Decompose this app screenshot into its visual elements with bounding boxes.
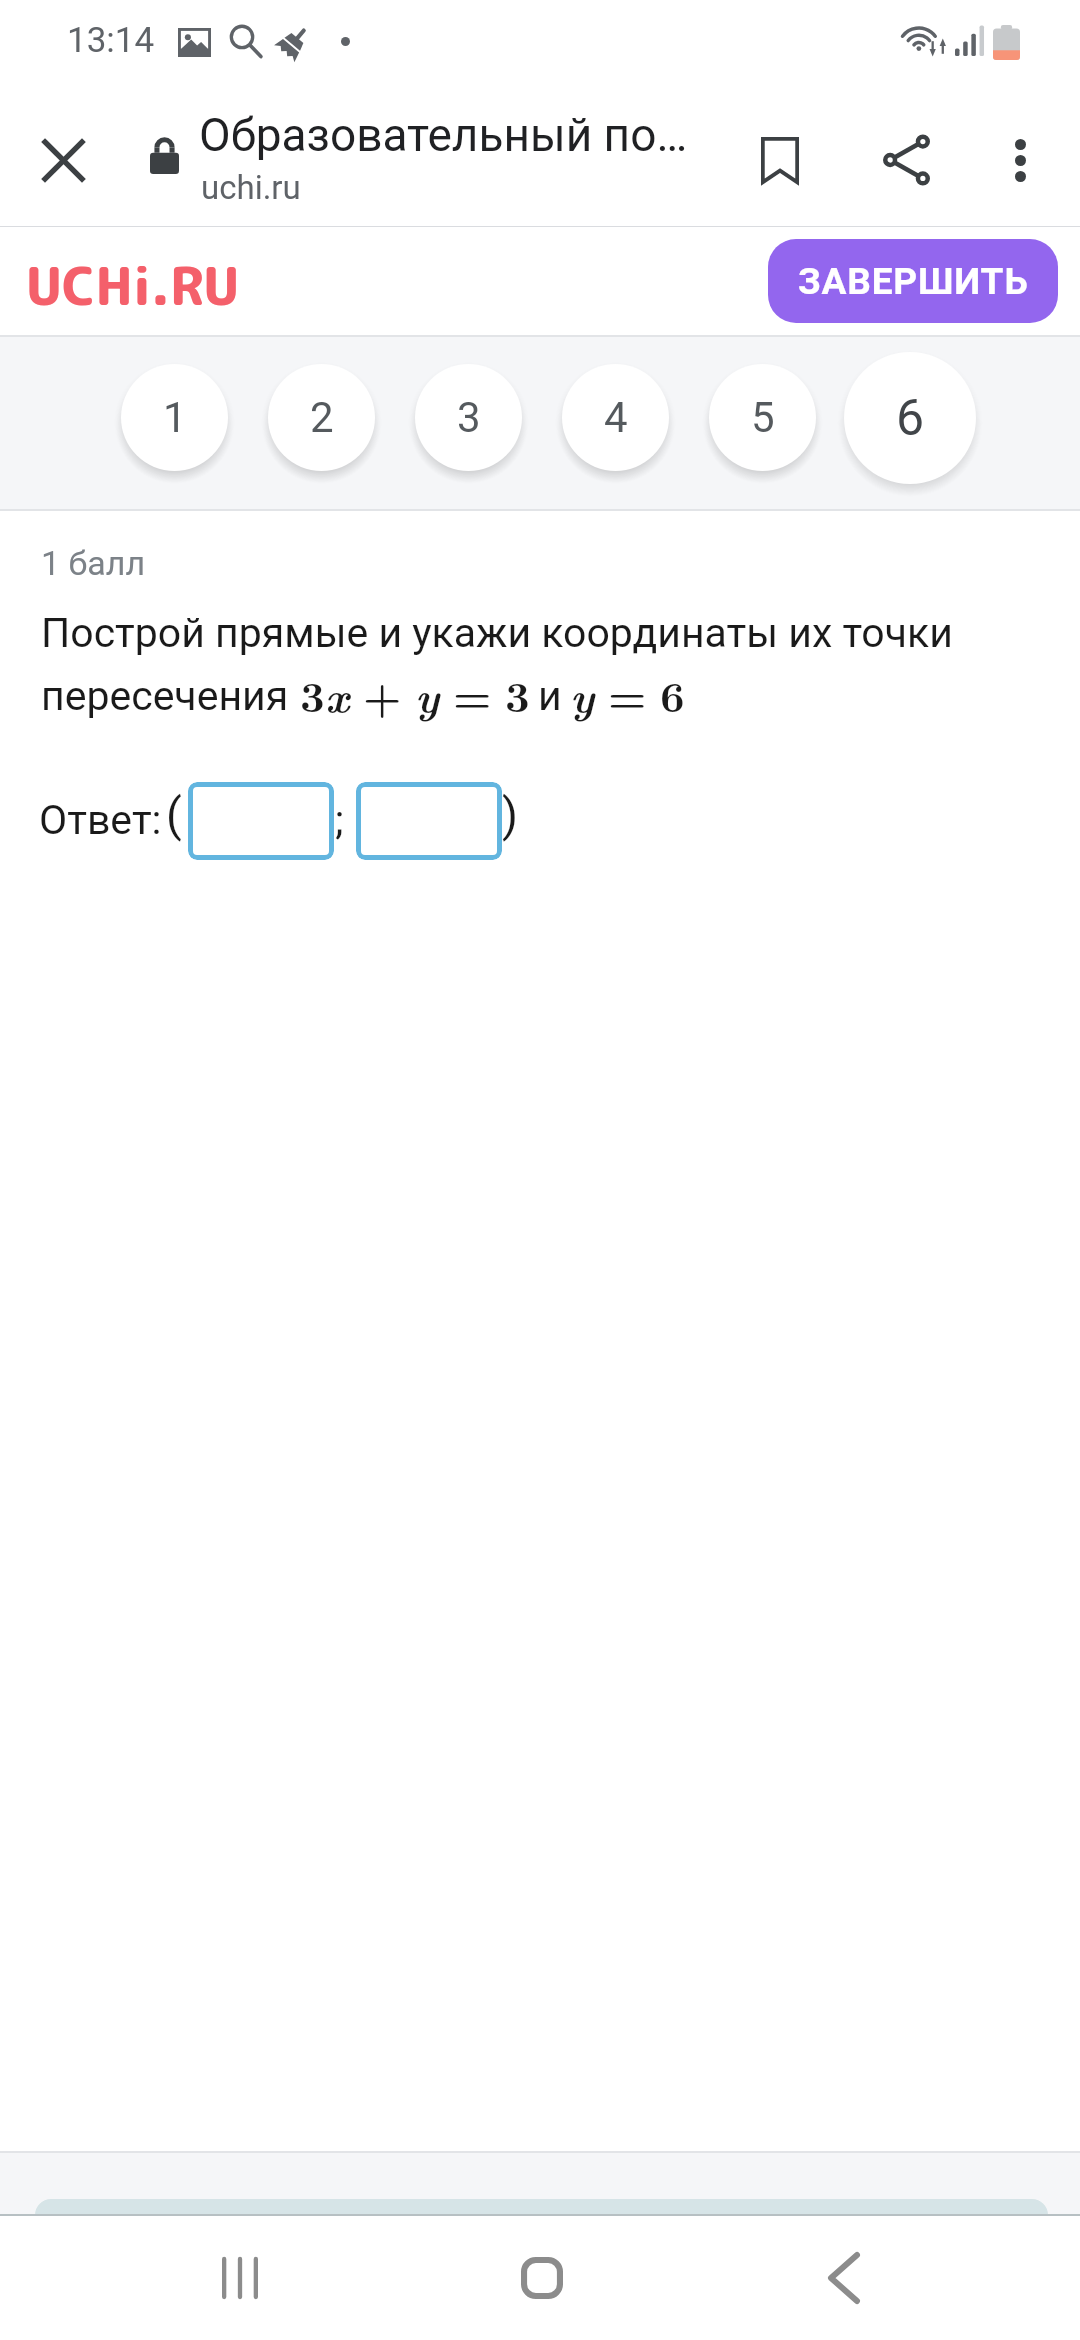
button[interactable]: 6	[844, 352, 976, 484]
button[interactable]: ЗАВЕРШИТЬ	[768, 239, 1058, 323]
staticText: 5	[751, 393, 775, 442]
staticText: и	[538, 672, 562, 720]
staticText: Образовательный по…	[199, 108, 688, 162]
button[interactable]: 2	[268, 364, 375, 471]
staticText: UCHi.RU	[26, 249, 240, 322]
staticText: 3	[505, 663, 530, 724]
staticText: 1	[163, 393, 187, 442]
staticText: 2	[310, 393, 334, 442]
staticText: =	[608, 663, 647, 724]
staticText: 1 балл	[41, 543, 146, 583]
staticText: Ответ:	[39, 796, 162, 844]
staticText: +	[363, 663, 402, 724]
staticText: 6	[896, 389, 925, 448]
staticText: 4	[604, 393, 628, 442]
button[interactable]	[356, 782, 502, 860]
staticText: x	[325, 663, 350, 726]
button[interactable]: Home	[487, 2223, 597, 2333]
staticText: ЗАВЕРШИТЬ	[798, 260, 1029, 303]
staticText: пересечения	[41, 672, 289, 720]
staticText: y	[415, 663, 440, 726]
button[interactable]: Back	[789, 2223, 899, 2333]
button[interactable]: 1	[121, 364, 228, 471]
button[interactable]: Close	[21, 118, 105, 202]
staticText: Построй прямые и укажи координаты их точ…	[41, 609, 953, 657]
staticText: y	[570, 663, 595, 726]
button[interactable]	[188, 782, 334, 860]
button[interactable]: Bookmark	[737, 117, 823, 203]
staticText: )	[502, 788, 519, 842]
button[interactable]: 3	[415, 364, 522, 471]
button[interactable]: Share	[863, 117, 949, 203]
button[interactable]: Recent apps	[185, 2223, 295, 2333]
button[interactable]: More options	[977, 117, 1063, 203]
staticText: 13:14	[67, 20, 155, 61]
staticText: 3	[300, 663, 325, 724]
staticText: 3	[457, 393, 481, 442]
staticText: =	[453, 663, 492, 724]
staticText: (	[166, 788, 182, 842]
staticText: uchi.ru	[201, 168, 301, 207]
staticText: 6	[660, 663, 685, 724]
button[interactable]: 5	[709, 364, 816, 471]
staticText: ;	[335, 796, 344, 844]
button[interactable]: 4	[562, 364, 669, 471]
